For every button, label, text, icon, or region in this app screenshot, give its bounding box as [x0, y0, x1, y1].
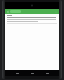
- button[interactable]: Navigate up: [6, 10, 10, 14]
- button[interactable]: Recent apps: [44, 70, 50, 76]
- button[interactable]: Home: [29, 70, 35, 76]
- button[interactable]: Back: [14, 70, 20, 76]
- button[interactable]: Search: [10, 10, 21, 13]
